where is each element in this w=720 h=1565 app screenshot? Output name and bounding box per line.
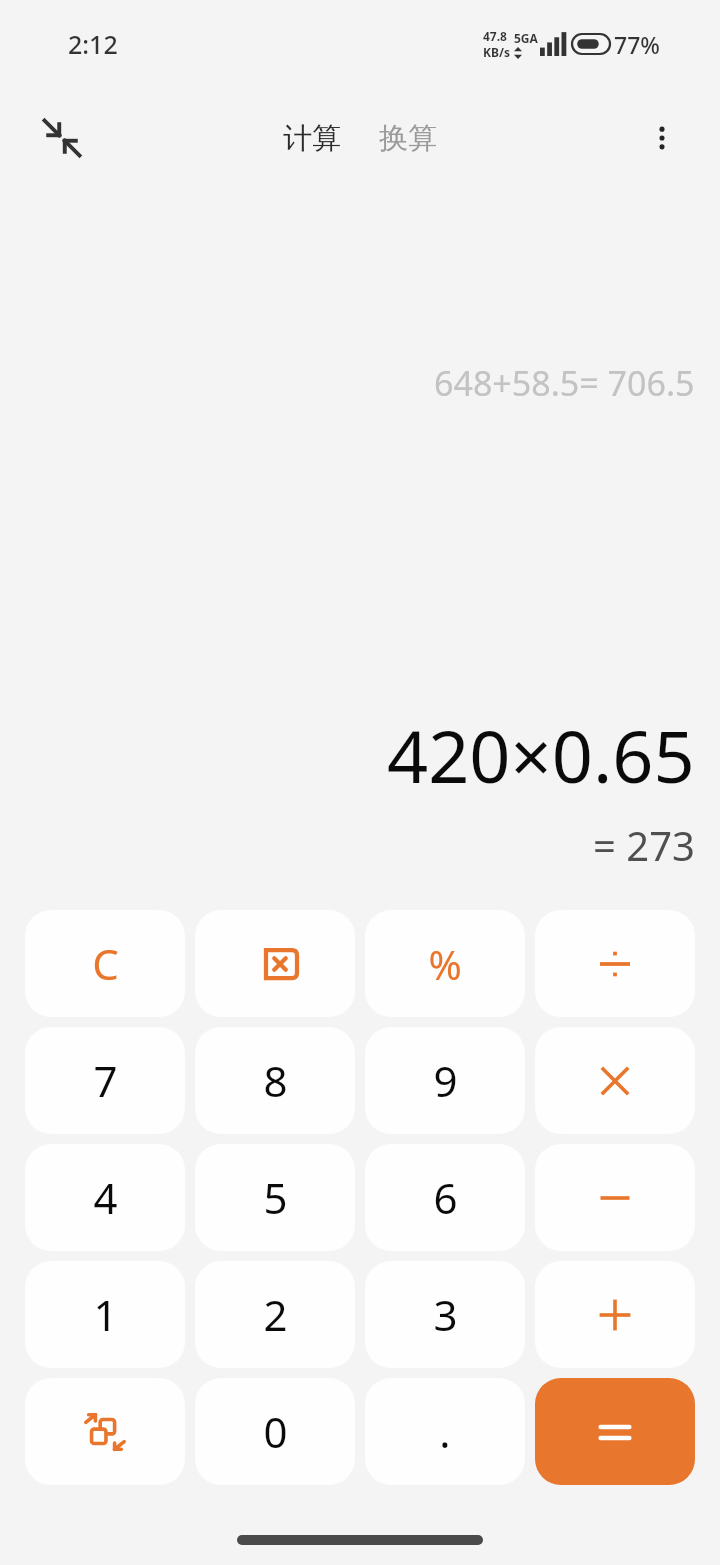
button[interactable]: Collapse [30, 106, 94, 170]
button[interactable]: 9 [365, 1027, 525, 1134]
button[interactable]: C [25, 910, 185, 1017]
staticText: 5GA [514, 30, 538, 46]
staticText: 648+58.5= 706.5 [434, 360, 695, 406]
button[interactable]: 2 [195, 1261, 355, 1368]
button[interactable]: 4 [25, 1144, 185, 1251]
button[interactable]: 1 [25, 1261, 185, 1368]
button[interactable]: Divide [535, 910, 695, 1017]
staticText: 9 [433, 1052, 458, 1109]
staticText: 2:12 [68, 27, 118, 61]
staticText: 47.8 [483, 28, 507, 44]
button[interactable]: 8 [195, 1027, 355, 1134]
button[interactable]: 5 [195, 1144, 355, 1251]
button[interactable]: 6 [365, 1144, 525, 1251]
staticText: 3 [433, 1286, 458, 1343]
staticText: 7 [93, 1052, 118, 1109]
staticText: 5 [263, 1169, 288, 1226]
staticText: 6 [433, 1169, 458, 1226]
button[interactable]: . [365, 1378, 525, 1485]
staticText: 换算 [379, 120, 437, 157]
button[interactable]: Add [535, 1261, 695, 1368]
button[interactable]: 3 [365, 1261, 525, 1368]
button[interactable]: Subtract [535, 1144, 695, 1251]
button[interactable]: 计算 [277, 112, 347, 165]
button[interactable]: Backspace [195, 910, 355, 1017]
staticText: KB/s [483, 44, 510, 60]
staticText: 计算 [283, 120, 341, 157]
button[interactable]: More options [630, 106, 694, 170]
button[interactable]: % [365, 910, 525, 1017]
staticText: 0 [263, 1403, 288, 1460]
staticText: 1 [93, 1286, 118, 1343]
staticText: % [428, 937, 462, 991]
staticText: 8 [263, 1052, 288, 1109]
button[interactable]: 换算 [373, 112, 443, 165]
button[interactable]: Unit conversion [25, 1378, 185, 1485]
button[interactable]: Equals [535, 1378, 695, 1485]
button[interactable]: 0 [195, 1378, 355, 1485]
staticText: = 273 [593, 818, 695, 872]
button[interactable]: Multiply [535, 1027, 695, 1134]
staticText: 2 [263, 1286, 288, 1343]
staticText: 4 [93, 1169, 118, 1226]
staticText: C [92, 935, 119, 992]
staticText: . [439, 1403, 451, 1460]
staticText: 420×0.65 [387, 706, 695, 804]
button[interactable]: 7 [25, 1027, 185, 1134]
staticText: 77% [614, 29, 660, 60]
